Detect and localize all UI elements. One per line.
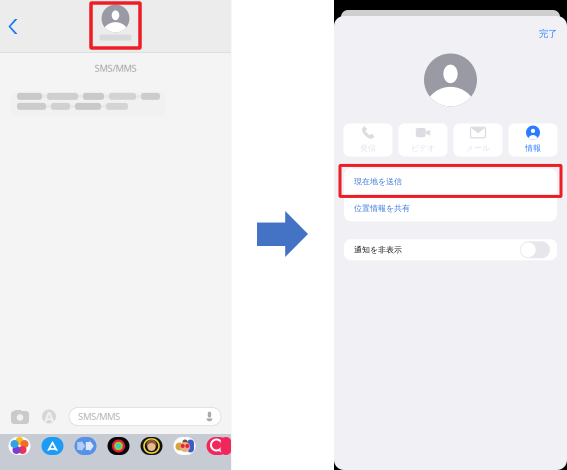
button[interactable]: Back (0, 11, 26, 41)
button[interactable]: 発信 (343, 123, 392, 156)
button[interactable]: App (173, 437, 195, 455)
staticText: 現在地を送信 (354, 177, 402, 186)
button[interactable]: Hide Alerts (520, 241, 550, 258)
button[interactable]: App (74, 437, 96, 455)
button[interactable]: 完了 (534, 25, 562, 42)
staticText: 情報 (525, 143, 541, 153)
button[interactable]: App Store (35, 405, 63, 427)
button[interactable]: App (41, 437, 63, 455)
staticText: ビデオ (411, 143, 435, 153)
button[interactable]: Camera (5, 405, 35, 427)
button[interactable]: App (107, 437, 129, 455)
button[interactable]: App (140, 437, 162, 455)
button[interactable]: 情報 (508, 123, 557, 156)
staticText: 位置情報を共有 (354, 203, 410, 213)
staticText: SMS/MMS (78, 410, 120, 423)
staticText: 通知を非表示 (354, 245, 402, 255)
button[interactable]: メール (453, 123, 502, 156)
staticText: メール (466, 143, 490, 153)
button[interactable]: 現在地を送信 (344, 168, 557, 194)
button[interactable]: App (206, 437, 228, 455)
staticText: 発信 (360, 143, 376, 153)
button[interactable]: Contact (93, 4, 137, 40)
staticText: A (44, 407, 54, 426)
button[interactable]: 位置情報を共有 (344, 195, 557, 221)
staticText: SMS/MMS (94, 62, 136, 74)
staticText: 完了 (539, 28, 557, 39)
button[interactable]: App (8, 437, 30, 455)
button[interactable]: ビデオ (398, 123, 447, 156)
